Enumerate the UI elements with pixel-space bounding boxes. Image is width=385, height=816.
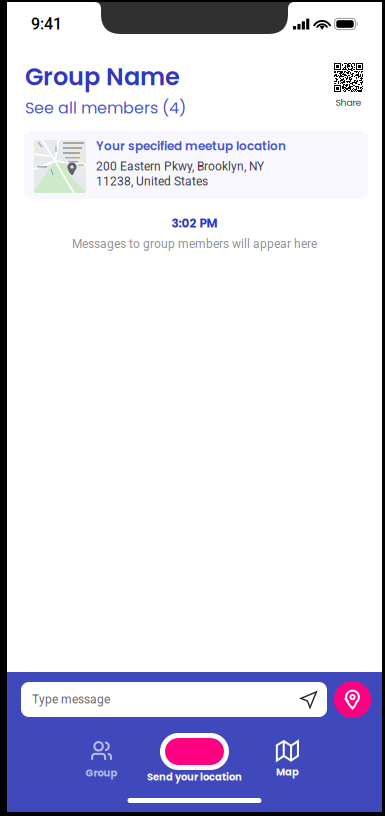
button[interactable]: Share: [334, 60, 363, 109]
staticText: Group Name: [25, 60, 180, 94]
button[interactable]: Your specified meetup location: [24, 130, 368, 199]
staticText: Map: [276, 765, 299, 779]
button[interactable]: See all members (4): [25, 94, 186, 119]
staticText: Your specified meetup location: [96, 137, 286, 154]
button[interactable]: Share location: [334, 681, 371, 718]
staticText: 11238, United States: [96, 174, 208, 188]
button[interactable]: Group: [63, 737, 139, 780]
staticText: 9:41: [31, 15, 62, 33]
button[interactable]: Map: [249, 738, 325, 779]
staticText: Group: [85, 766, 117, 780]
staticText: Type message: [32, 692, 110, 707]
staticText: 200 Eastern Pkwy, Brooklyn, NY: [96, 159, 264, 173]
staticText: Messages to group members will appear he…: [72, 237, 317, 251]
staticText: Send your location: [147, 770, 242, 784]
button[interactable]: Send message: [300, 691, 317, 708]
staticText: Share: [335, 96, 361, 109]
button[interactable]: Send your location: [139, 733, 249, 784]
staticText: See all members (4): [25, 97, 186, 119]
staticText: 3:02 PM: [171, 215, 217, 232]
